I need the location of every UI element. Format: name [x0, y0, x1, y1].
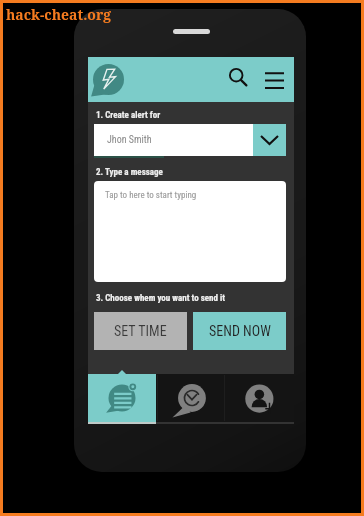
- staticText: 2. Type a message: [96, 167, 163, 178]
- button[interactable]: SEND NOW: [193, 312, 286, 350]
- button[interactable]: Contacts: [225, 374, 294, 422]
- staticText: Jhon Smith: [107, 134, 152, 146]
- staticText: Tap to here to start typing: [105, 190, 197, 201]
- button[interactable]: Jhon Smith: [94, 124, 286, 156]
- other: Fast alert logo: [92, 63, 125, 96]
- button[interactable]: SET TIME: [94, 312, 187, 350]
- staticText: SET TIME: [114, 323, 167, 339]
- staticText: SEND NOW: [209, 323, 271, 339]
- staticText: 3. Choose whem you want to send it: [96, 293, 226, 304]
- button[interactable]: Scheduled: [156, 374, 225, 422]
- button[interactable]: Tap to here to start typing: [94, 181, 286, 282]
- button[interactable]: Messages: [88, 374, 156, 422]
- button[interactable]: Search: [225, 64, 255, 94]
- staticText: hack-cheat.org: [6, 5, 112, 24]
- staticText: 1. Create alert for: [96, 110, 161, 121]
- button[interactable]: Menu: [259, 65, 289, 95]
